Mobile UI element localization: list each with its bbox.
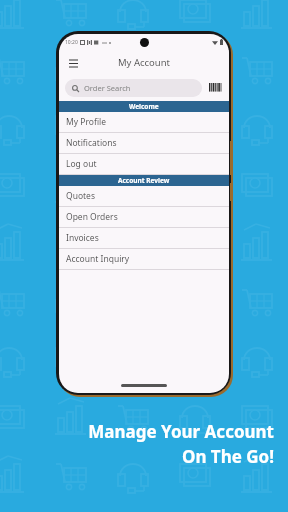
button[interactable]: Scan barcode [207, 80, 223, 96]
button[interactable]: Quotes [59, 186, 229, 206]
button[interactable]: Open navigation menu [64, 54, 82, 72]
button[interactable]: Notifications [59, 133, 229, 153]
staticText: 10:20 [65, 39, 78, 46]
button[interactable]: Invoices [59, 228, 229, 248]
staticText: Log out [66, 158, 97, 170]
staticText: On The Go! [14, 445, 274, 468]
staticText: Quotes [66, 190, 95, 202]
staticText: Order Search [84, 83, 131, 93]
staticText: Invoices [66, 232, 99, 244]
staticText: Manage Your Account [14, 420, 274, 443]
button[interactable]: Order Search [65, 79, 202, 97]
button[interactable]: Open Orders [59, 207, 229, 227]
staticText: Account Review [118, 176, 170, 185]
staticText: Account Inquiry [66, 253, 130, 265]
button[interactable]: Log out [59, 154, 229, 174]
staticText: My Account [118, 56, 171, 69]
staticText: Open Orders [66, 211, 118, 223]
staticText: My Profile [66, 116, 106, 128]
staticText: Welcome [129, 102, 159, 111]
staticText: Notifications [66, 137, 117, 149]
button[interactable]: Account Inquiry [59, 249, 229, 269]
button[interactable]: My Profile [59, 112, 229, 132]
